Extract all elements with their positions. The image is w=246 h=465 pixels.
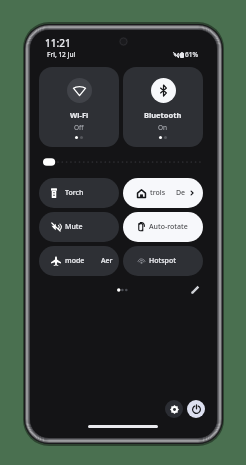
staticText: De bbox=[176, 188, 186, 198]
staticText: Torch bbox=[65, 188, 84, 198]
staticText: 11:21 bbox=[45, 36, 71, 50]
staticText: Aer bbox=[101, 256, 113, 266]
button[interactable]: Brightness bbox=[39, 153, 205, 171]
button[interactable]: trols bbox=[123, 178, 203, 208]
staticText: Hotspot bbox=[149, 256, 176, 266]
staticText: Bluetooth bbox=[144, 110, 182, 120]
button[interactable]: Auto-rotate bbox=[123, 212, 203, 242]
staticText: Mute bbox=[65, 222, 83, 232]
staticText: Fri, 12 Jul bbox=[47, 50, 76, 59]
staticText: Wi-Fi bbox=[70, 110, 89, 120]
button[interactable]: Mute bbox=[39, 212, 119, 242]
button[interactable]: Wi-Fi bbox=[39, 67, 119, 147]
staticText: On bbox=[158, 123, 168, 132]
button[interactable]: Bluetooth bbox=[123, 67, 203, 147]
staticText: mode bbox=[65, 256, 85, 266]
button[interactable]: Settings bbox=[165, 400, 183, 418]
button[interactable]: mode bbox=[39, 246, 119, 276]
button[interactable]: Power bbox=[187, 400, 205, 418]
button[interactable]: Hotspot bbox=[123, 246, 203, 276]
staticText: Auto-rotate bbox=[149, 222, 188, 232]
button[interactable]: Edit bbox=[188, 283, 202, 297]
button[interactable]: Torch bbox=[39, 178, 119, 208]
staticText: Off bbox=[74, 123, 84, 132]
staticText: 61% bbox=[185, 50, 198, 59]
staticText: trols bbox=[150, 188, 166, 198]
